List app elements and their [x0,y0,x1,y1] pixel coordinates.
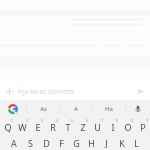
staticText: 7 [101,118,104,123]
staticText: Q [4,121,12,133]
button[interactable]: 2 [15,118,30,135]
button[interactable]: Add attachment [0,82,18,100]
button[interactable]: G [69,135,84,150]
staticText: Z [80,121,86,133]
staticText: R [50,121,56,133]
button[interactable]: 3 [30,118,45,135]
button[interactable]: Google search [0,100,26,118]
staticText: U [94,121,101,133]
staticText: A [74,105,78,113]
button[interactable]: 9 [120,118,135,135]
staticText: G [73,137,80,149]
button[interactable]: S [22,135,38,150]
button[interactable]: D [38,135,54,150]
button[interactable]: Send [130,82,150,100]
button[interactable]: 7 [90,118,105,135]
staticText: P [140,121,146,133]
staticText: E [35,121,41,133]
button[interactable]: F [54,135,69,150]
staticText: W [18,121,27,133]
button[interactable]: 8 [105,118,120,135]
button[interactable]: A [6,135,22,150]
staticText: 1 [11,118,14,123]
staticText: T [65,121,71,133]
button[interactable]: 4 [45,118,60,135]
staticText: 2 [26,118,29,123]
staticText: 8 [116,118,119,123]
button[interactable]: Írja be az üzenetet [18,82,130,100]
button[interactable]: A [60,100,92,118]
button[interactable]: Ha [93,100,125,118]
button[interactable]: K [114,135,129,150]
button[interactable]: 6 [75,118,90,135]
staticText: S [28,137,33,149]
staticText: D [43,137,50,149]
staticText: I [111,121,115,133]
button[interactable]: 5 [60,118,75,135]
staticText: 6 [86,118,89,123]
staticText: J [105,137,108,149]
button[interactable]: 1 [0,118,15,135]
staticText: 0 [146,118,149,123]
staticText: L [134,137,139,149]
staticText: 4 [56,118,59,123]
staticText: F [59,137,64,149]
button[interactable]: Voice input [126,100,150,118]
staticText: K [119,137,125,149]
button[interactable]: Az [27,100,59,118]
staticText: Ha [105,105,113,113]
staticText: A [11,137,17,149]
button[interactable]: 0 [135,118,150,135]
button[interactable]: L [129,135,144,150]
staticText: 9 [131,118,134,123]
staticText: Az [40,105,47,113]
staticText: 3 [41,118,44,123]
staticText: Írja be az üzenetet [18,87,75,96]
button[interactable]: H [84,135,99,150]
staticText: H [88,137,95,149]
button[interactable]: J [99,135,114,150]
staticText: O [124,121,132,133]
staticText: 5 [71,118,74,123]
